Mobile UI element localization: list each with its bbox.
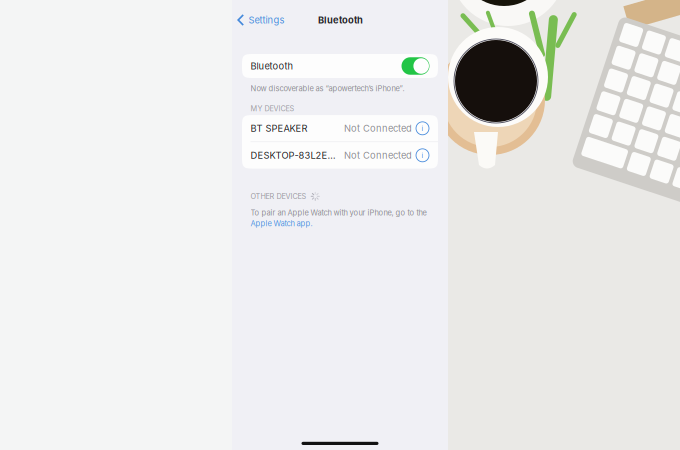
staticText: OTHER DEVICES (250, 192, 306, 201)
button[interactable]: BT SPEAKER (242, 115, 438, 142)
staticText: MY DEVICES (250, 104, 294, 113)
button[interactable]: Apple Watch app. (242, 219, 438, 228)
staticText: Bluetooth (250, 60, 293, 72)
staticText: Now discoverable as “apowertech’s iPhone… (250, 84, 404, 93)
staticText: Not Connected (344, 150, 412, 161)
staticText: i (421, 151, 423, 160)
button[interactable]: DESKTOP-83L2E… (242, 142, 438, 169)
button[interactable]: Settings (242, 11, 289, 29)
staticText: i (421, 124, 423, 133)
staticText: Settings (248, 14, 284, 26)
staticText: Apple Watch app. (250, 219, 312, 228)
staticText: DESKTOP-83L2E… (250, 150, 335, 161)
staticText: Not Connected (344, 123, 412, 134)
staticText: To pair an Apple Watch with your iPhone,… (250, 208, 426, 217)
staticText: BT SPEAKER (250, 123, 307, 134)
staticText: Bluetooth (318, 14, 363, 26)
